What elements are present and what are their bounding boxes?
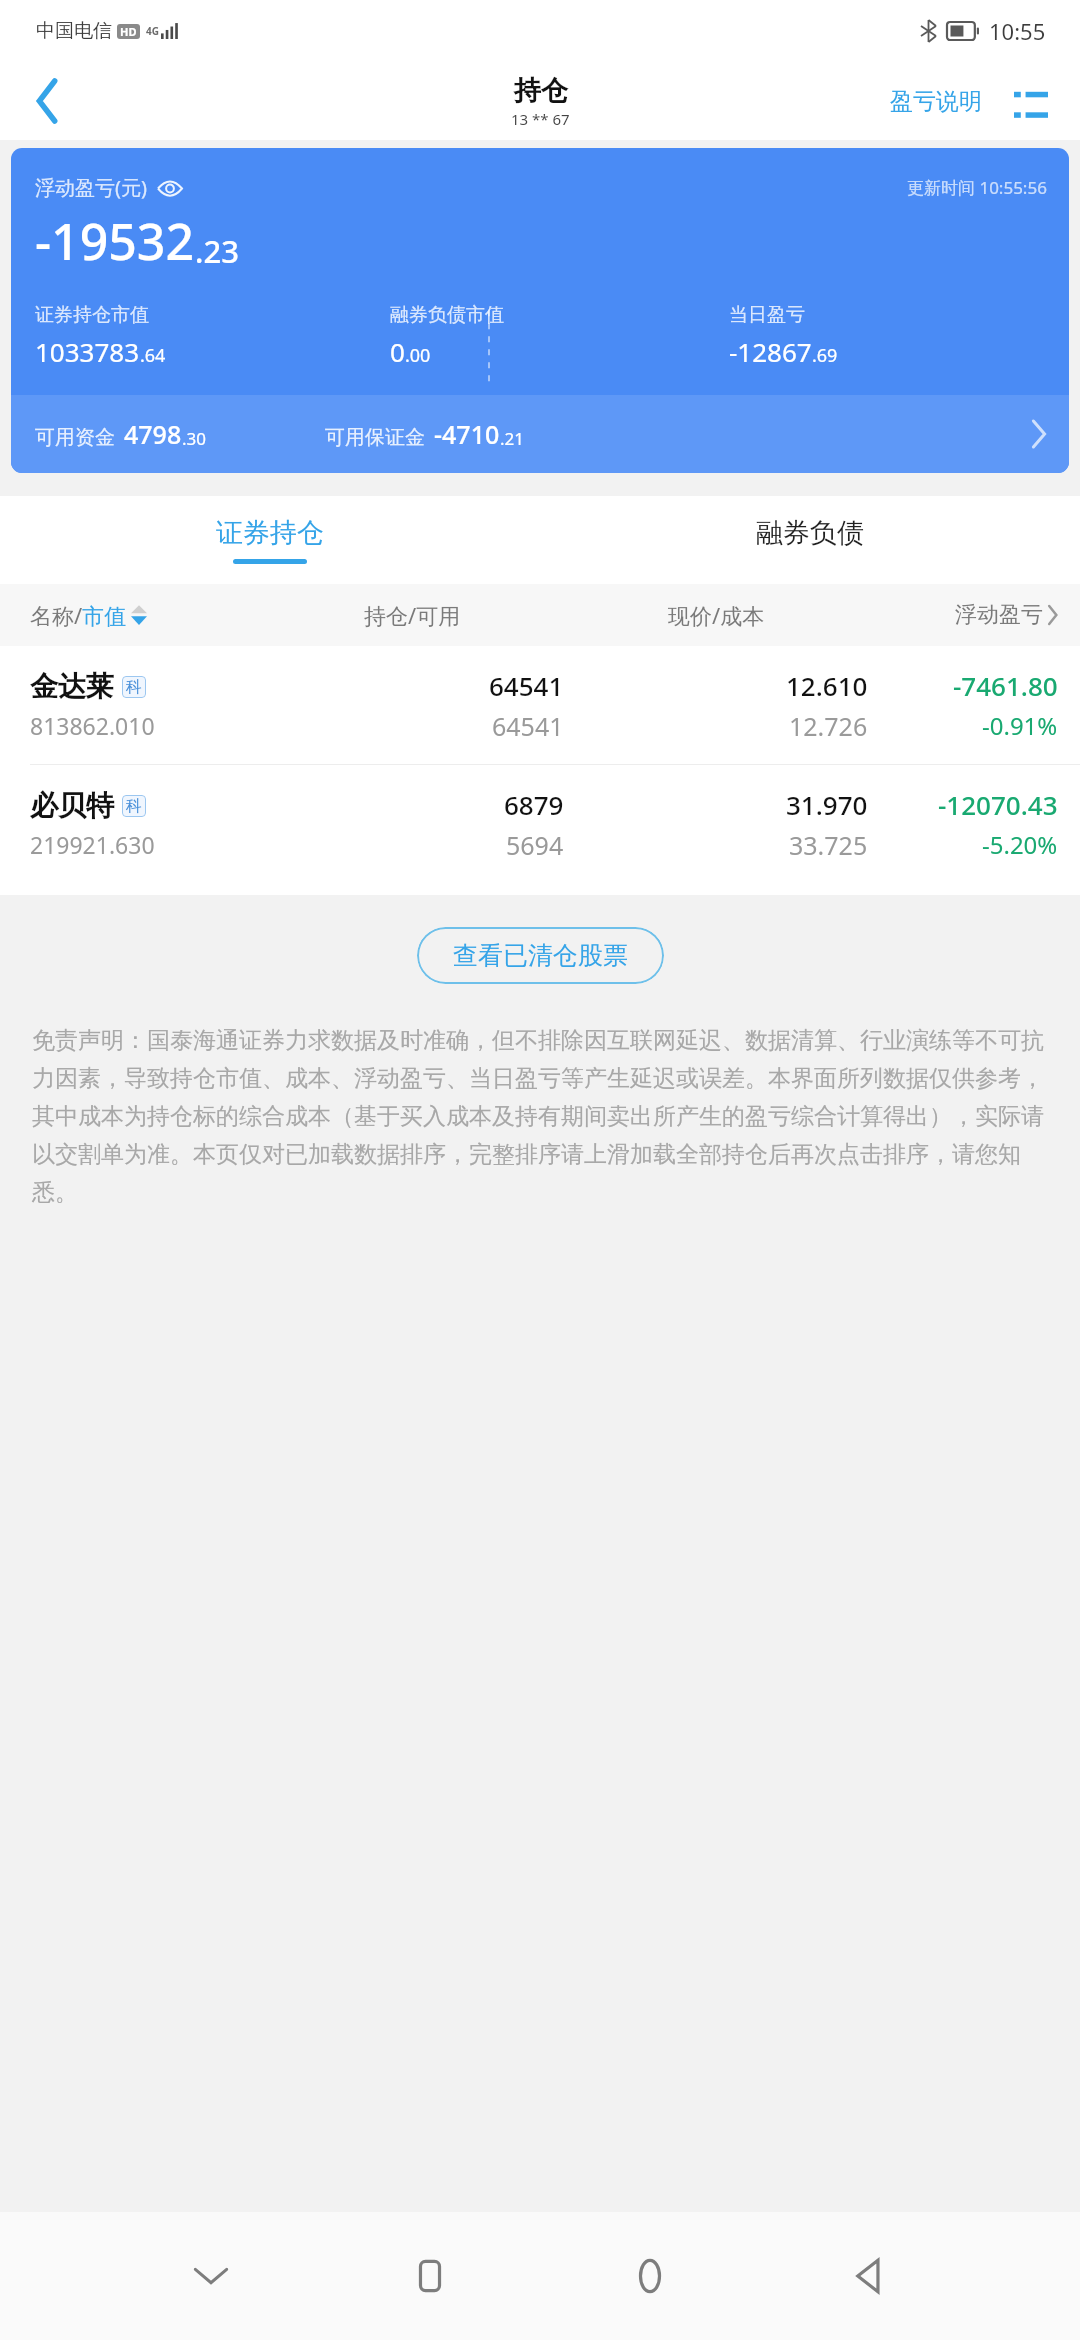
staticText: 持仓/可用: [364, 600, 461, 630]
staticText: 查看已清仓股票: [453, 940, 628, 971]
staticText: 6879: [504, 787, 564, 822]
staticText: 31.970: [786, 787, 868, 822]
staticText: -0.91%: [982, 709, 1058, 742]
staticText: 盈亏说明: [890, 87, 982, 116]
staticText: 12.610: [786, 668, 868, 703]
staticText: 科: [126, 796, 142, 816]
button[interactable]: 融券负债: [540, 496, 1080, 584]
staticText: 0: [390, 334, 405, 369]
staticText: 中国电信: [36, 19, 112, 43]
staticText: 可用资金: [35, 425, 115, 450]
button[interactable]: List menu: [1008, 79, 1054, 125]
button[interactable]: 金达莱: [0, 646, 1080, 764]
staticText: 64541: [492, 709, 564, 743]
staticText: 4798: [124, 417, 182, 451]
staticText: 219921.630: [30, 829, 155, 860]
staticText: -12867: [729, 334, 812, 369]
staticText: 当日盈亏: [729, 303, 805, 327]
button[interactable]: Hide keyboard: [163, 2228, 259, 2324]
staticText: .64: [140, 343, 166, 368]
staticText: .69: [812, 343, 838, 368]
staticText: 更新时间 10:55:56: [907, 176, 1047, 199]
button[interactable]: Back: [821, 2228, 917, 2324]
button[interactable]: Back: [0, 62, 96, 140]
staticText: 813862.010: [30, 710, 155, 741]
staticText: 浮动盈亏(元): [35, 174, 147, 201]
button[interactable]: Toggle visibility: [157, 175, 183, 201]
staticText: -12070.43: [938, 787, 1058, 822]
staticText: HD: [120, 24, 137, 39]
staticText: 可用保证金: [325, 425, 425, 450]
staticText: 融券负债: [756, 516, 864, 550]
staticText: .23: [195, 230, 239, 272]
button[interactable]: 可用资金: [11, 395, 1069, 473]
button[interactable]: 证券持仓: [0, 496, 540, 584]
staticText: 现价/成本: [668, 600, 765, 630]
staticText: 浮动盈亏: [955, 601, 1043, 629]
staticText: -7461.80: [953, 668, 1058, 703]
staticText: 必贝特: [30, 788, 114, 823]
button[interactable]: 浮动盈亏(元): [11, 148, 1069, 473]
staticText: 科: [126, 677, 142, 697]
button[interactable]: Recent apps: [382, 2228, 478, 2324]
staticText: 金达莱: [30, 669, 114, 704]
staticText: 64541: [489, 668, 564, 703]
staticText: -5.20%: [982, 828, 1058, 861]
button[interactable]: Home: [602, 2228, 698, 2324]
button[interactable]: 查看已清仓股票: [417, 927, 664, 984]
staticText: 12.726: [789, 709, 868, 743]
staticText: 证券持仓市值: [35, 303, 149, 327]
button[interactable]: 名称/市值: [30, 600, 260, 630]
staticText: 持仓: [514, 74, 568, 108]
staticText: .30: [182, 427, 207, 450]
staticText: 融券负债市值: [390, 303, 504, 327]
staticText: .00: [405, 343, 431, 368]
staticText: 13 ** 67: [511, 109, 570, 129]
staticText: 证券持仓: [216, 516, 324, 550]
staticText: 1033783: [35, 334, 140, 369]
staticText: 4G: [146, 24, 159, 38]
staticText: 名称/市值: [30, 600, 127, 630]
staticText: 免责声明：国泰海通证券力求数据及时准确，但不排除因互联网延迟、数据清算、行业演练…: [32, 1026, 1048, 1207]
button[interactable]: 盈亏说明: [884, 77, 988, 126]
staticText: 5694: [506, 828, 564, 862]
staticText: -4710: [434, 417, 500, 451]
staticText: .21: [500, 427, 525, 450]
staticText: 33.725: [789, 828, 868, 862]
staticText: 10:55: [989, 16, 1046, 46]
staticText: -19532: [35, 207, 195, 275]
button[interactable]: 必贝特: [0, 765, 1080, 883]
